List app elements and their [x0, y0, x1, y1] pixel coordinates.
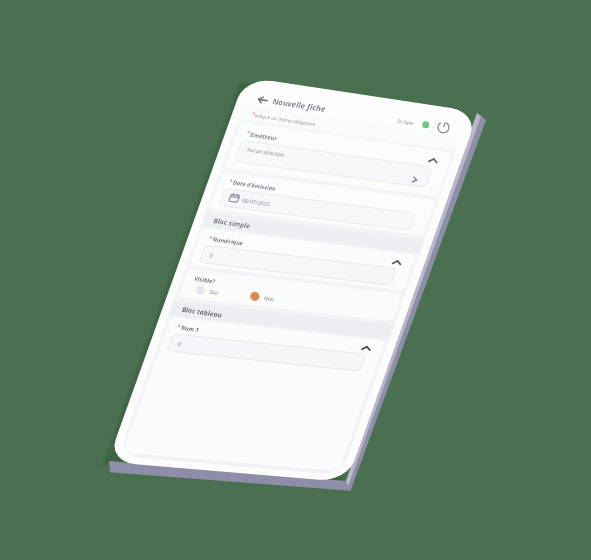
button[interactable]: Formulaire Nouvelle fiche [0, 0, 591, 560]
